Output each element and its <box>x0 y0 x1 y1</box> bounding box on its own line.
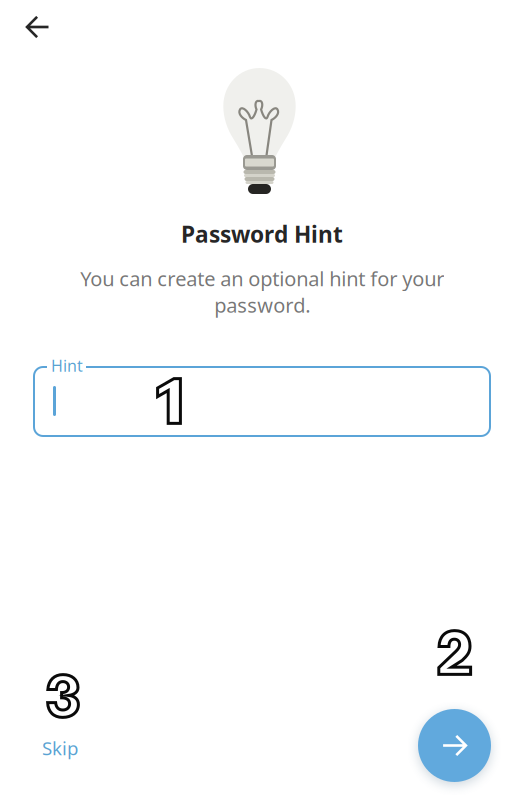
staticText: You can create an optional hint for your… <box>80 265 444 318</box>
staticText: Hint <box>51 355 83 376</box>
staticText: Password Hint <box>181 219 343 249</box>
button[interactable]: Skip <box>26 726 94 770</box>
button[interactable]: Back <box>15 4 61 50</box>
button[interactable]: Next <box>418 709 491 782</box>
staticText: Skip <box>42 736 78 760</box>
